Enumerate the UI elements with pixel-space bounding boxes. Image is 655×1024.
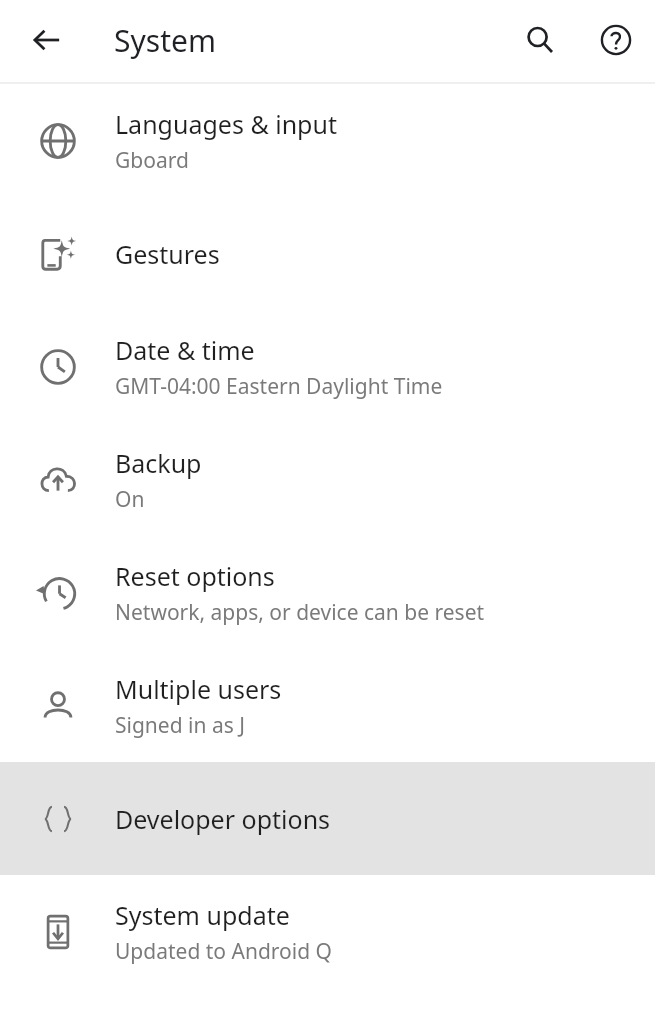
button[interactable]: Backup — [0, 423, 655, 536]
staticText: Backup — [115, 446, 202, 480]
staticText: Signed in as J — [115, 711, 245, 740]
staticText: Developer options — [115, 802, 331, 836]
staticText: Updated to Android Q — [115, 937, 332, 966]
button[interactable]: Developer options — [0, 762, 655, 875]
staticText: Languages & input — [115, 107, 337, 141]
staticText: Reset options — [115, 559, 275, 593]
staticText: Date & time — [115, 333, 255, 367]
button[interactable]: Help — [584, 8, 648, 72]
button[interactable]: Multiple users — [0, 649, 655, 762]
staticText: System — [114, 20, 216, 61]
button[interactable]: Back — [15, 8, 79, 72]
button[interactable]: Gestures — [0, 197, 655, 310]
staticText: System update — [115, 898, 290, 932]
staticText: Gboard — [115, 146, 189, 175]
button[interactable]: Reset options — [0, 536, 655, 649]
staticText: GMT-04:00 Eastern Daylight Time — [115, 372, 443, 401]
staticText: Network, apps, or device can be reset — [115, 598, 485, 627]
button[interactable]: Search — [508, 8, 572, 72]
button[interactable]: System update — [0, 875, 655, 988]
staticText: On — [115, 485, 145, 514]
button[interactable]: Date & time — [0, 310, 655, 423]
staticText: Multiple users — [115, 672, 282, 706]
staticText: Gestures — [115, 237, 220, 271]
button[interactable]: Languages & input — [0, 84, 655, 197]
